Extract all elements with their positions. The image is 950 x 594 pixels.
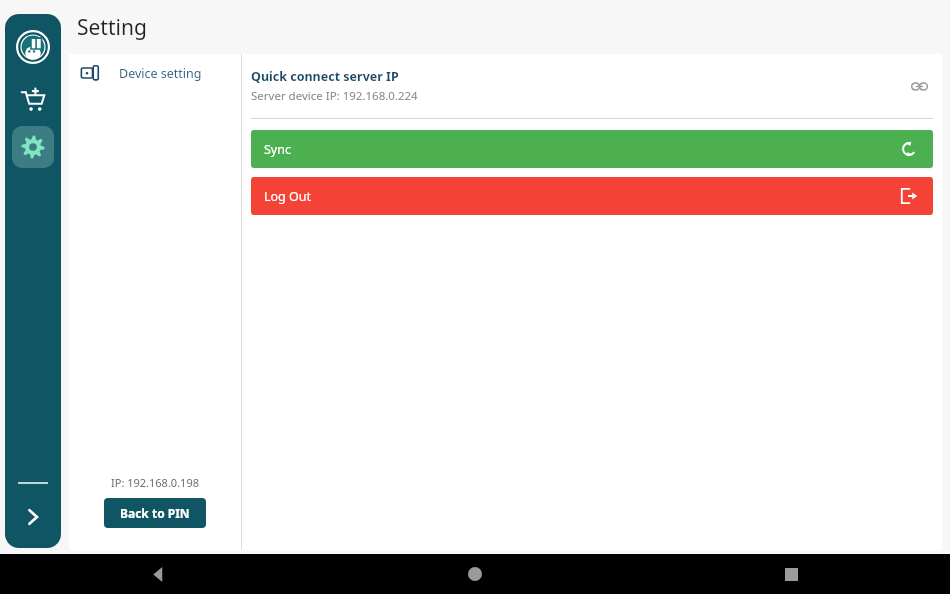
button[interactable]: Settings (12, 126, 54, 168)
other: Link (905, 72, 933, 100)
button[interactable]: Log Out (251, 177, 933, 215)
button[interactable]: Device setting (69, 54, 241, 92)
staticText: Device setting (119, 65, 202, 82)
button[interactable]: Sync (251, 130, 933, 168)
staticText: Sync (264, 141, 291, 158)
button[interactable]: Profile (14, 28, 52, 66)
staticText: Quick connect server IP (251, 68, 399, 85)
button[interactable]: Back (0, 554, 316, 594)
button[interactable]: Add to cart (13, 80, 53, 120)
staticText: Server device IP: 192.168.0.224 (251, 88, 418, 104)
button[interactable]: Expand menu (14, 498, 52, 536)
staticText: Log Out (264, 188, 312, 205)
button[interactable]: Back to PIN (104, 498, 206, 528)
button[interactable]: Recent apps (633, 554, 950, 594)
button[interactable]: Home (316, 554, 633, 594)
button[interactable]: Quick connect server IP (251, 62, 933, 110)
staticText: Setting (77, 13, 147, 42)
staticText: IP: 192.168.0.198 (111, 475, 199, 490)
staticText: Back to PIN (120, 505, 190, 521)
